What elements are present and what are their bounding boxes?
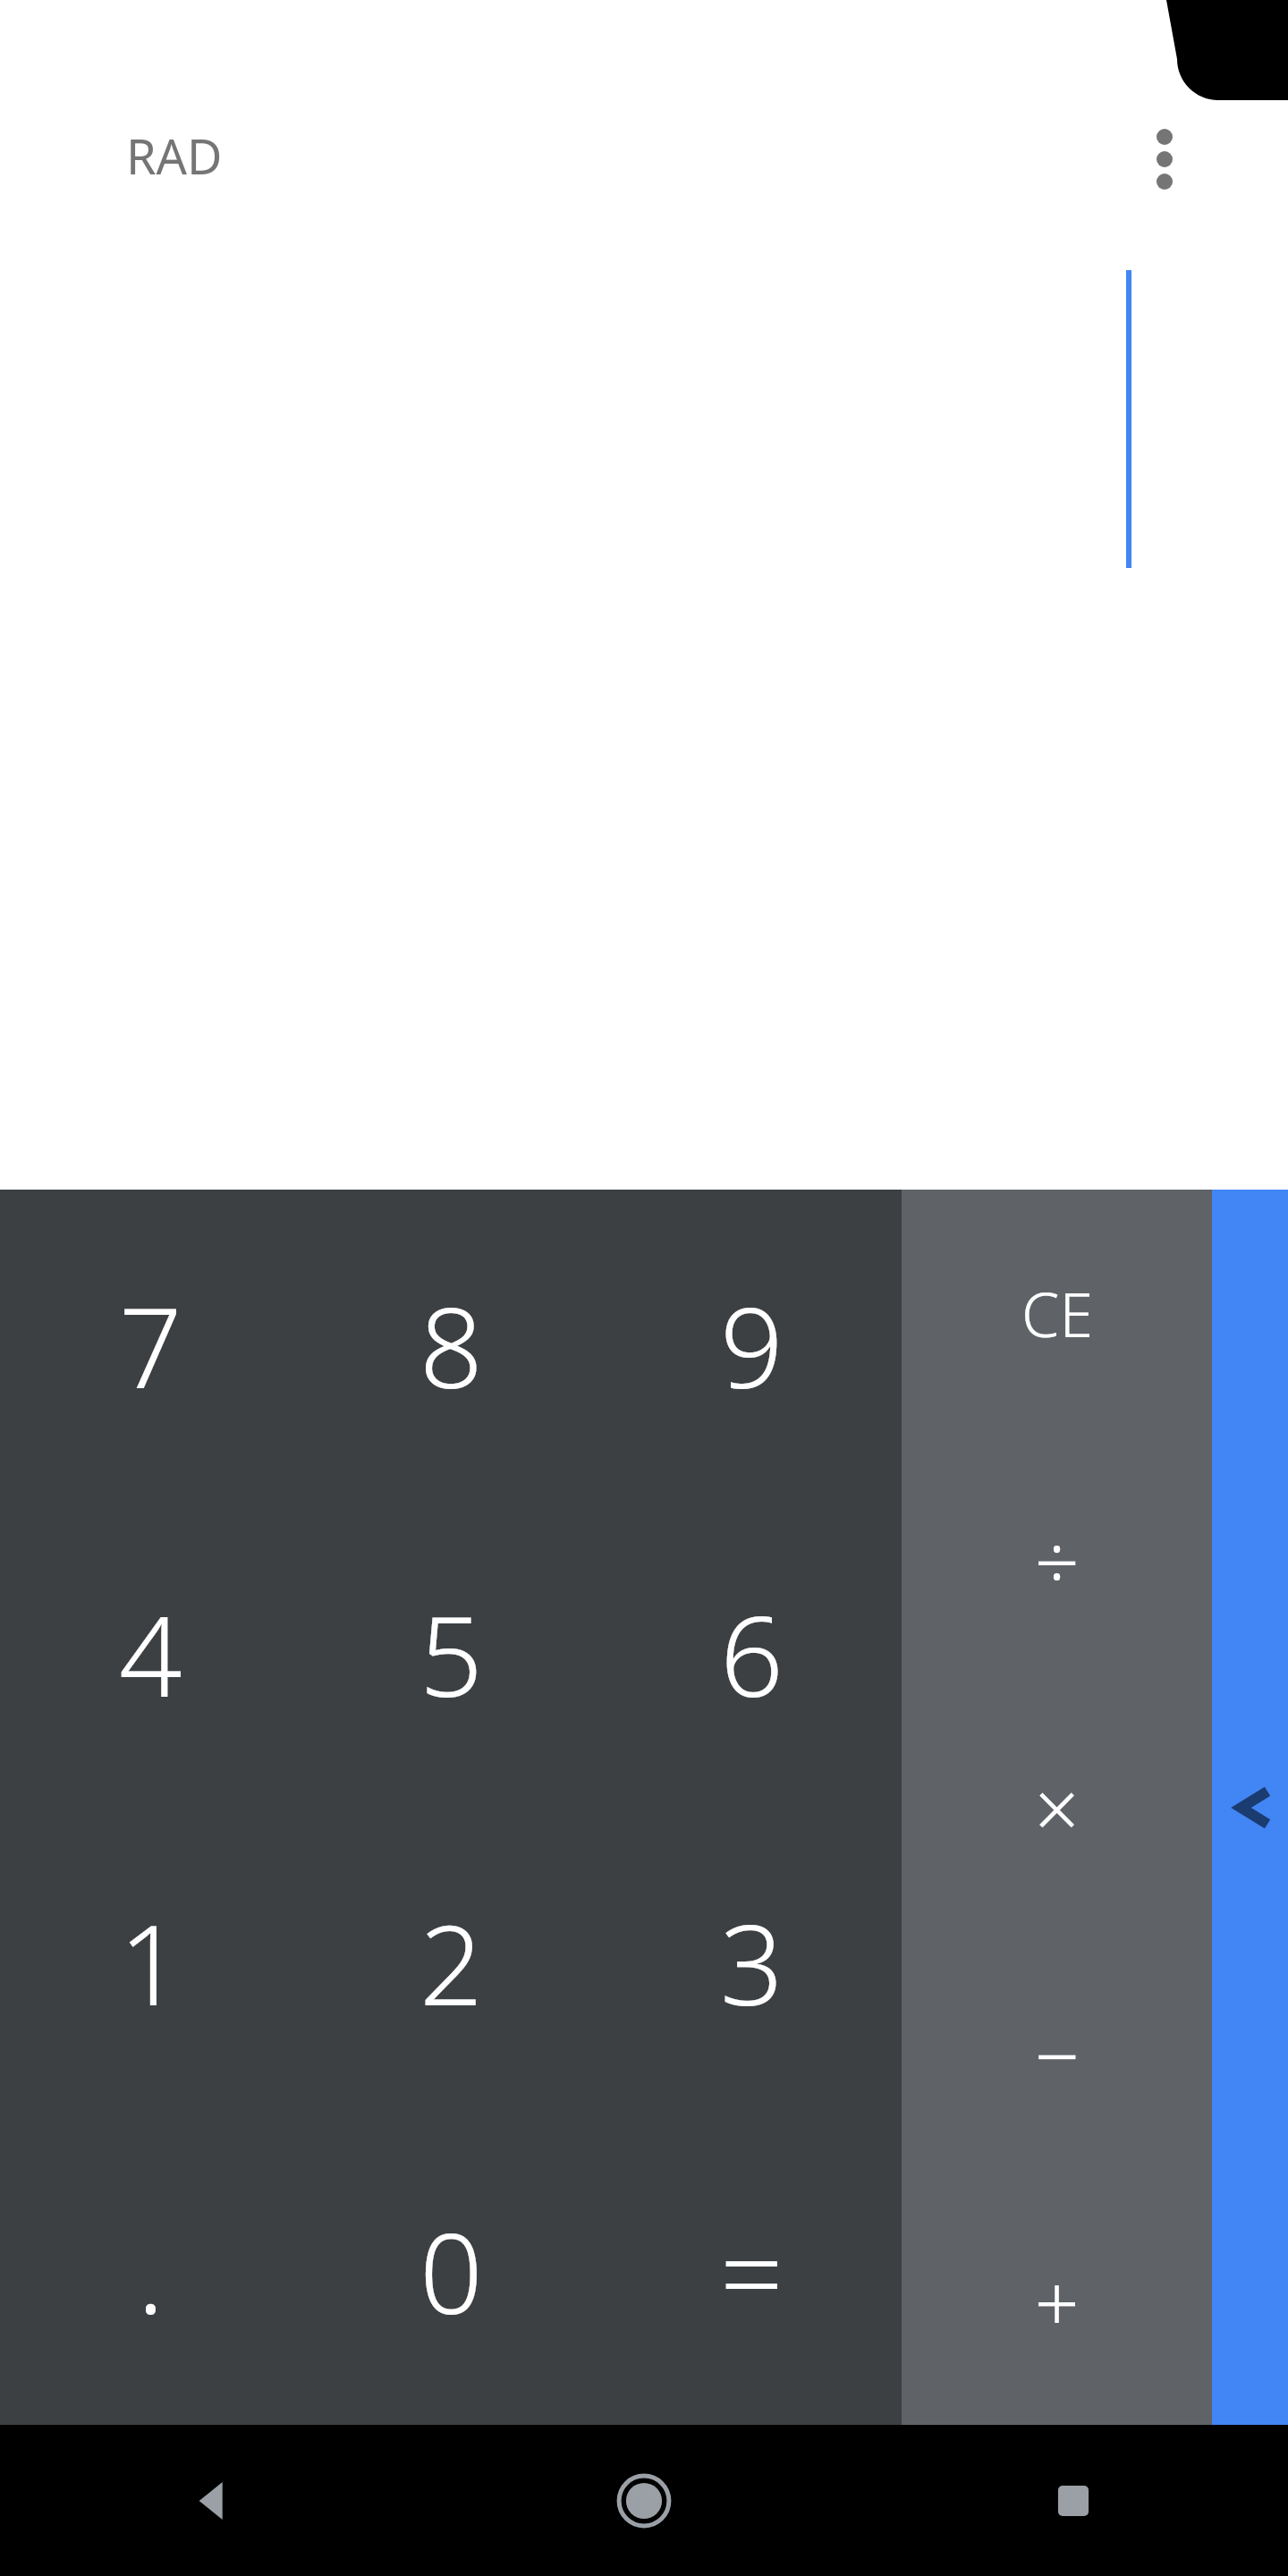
staticText: 2 — [419, 1886, 483, 2038]
button[interactable]: ÷ — [902, 1437, 1212, 1684]
button[interactable]: 0 — [301, 2116, 601, 2425]
staticText: 4 — [119, 1578, 182, 1729]
button[interactable]: 1 — [0, 1808, 301, 2116]
button[interactable]: + — [902, 2178, 1212, 2425]
staticText: 3 — [720, 1886, 784, 2038]
button[interactable]: . — [0, 2116, 301, 2425]
button[interactable]: RAD — [98, 118, 250, 193]
button[interactable]: Show advanced pad — [1212, 1190, 1288, 2425]
button[interactable]: 6 — [601, 1499, 902, 1808]
staticText: 9 — [720, 1269, 784, 1420]
button[interactable]: Recent apps — [859, 2425, 1288, 2576]
button[interactable]: 8 — [301, 1190, 601, 1499]
button[interactable]: Home — [429, 2425, 859, 2576]
staticText: RAD — [126, 123, 223, 189]
staticText: 1 — [119, 1886, 182, 2038]
staticText: = — [720, 2195, 784, 2346]
button[interactable]: 5 — [301, 1499, 601, 1808]
button[interactable]: More options — [1111, 106, 1218, 213]
button[interactable]: = — [601, 2116, 902, 2425]
button[interactable]: × — [902, 1684, 1212, 1931]
button[interactable]: 3 — [601, 1808, 902, 2116]
button[interactable]: − — [902, 1931, 1212, 2178]
staticText: 0 — [419, 2195, 483, 2346]
staticText: CE — [1021, 1272, 1093, 1355]
staticText: . — [137, 2195, 165, 2346]
button[interactable]: 7 — [0, 1190, 301, 1499]
staticText: ÷ — [1034, 1507, 1080, 1614]
button[interactable]: CE — [902, 1190, 1212, 1437]
staticText: × — [1034, 1754, 1080, 1861]
staticText: 8 — [419, 1269, 483, 1420]
staticText: 5 — [419, 1578, 483, 1729]
button[interactable]: 4 — [0, 1499, 301, 1808]
staticText: − — [1034, 2001, 1080, 2108]
staticText: + — [1034, 2248, 1080, 2355]
button[interactable]: 9 — [601, 1190, 902, 1499]
button[interactable]: 2 — [301, 1808, 601, 2116]
button[interactable]: Back — [0, 2425, 429, 2576]
staticText: 6 — [720, 1578, 784, 1729]
staticText: 7 — [119, 1269, 182, 1420]
